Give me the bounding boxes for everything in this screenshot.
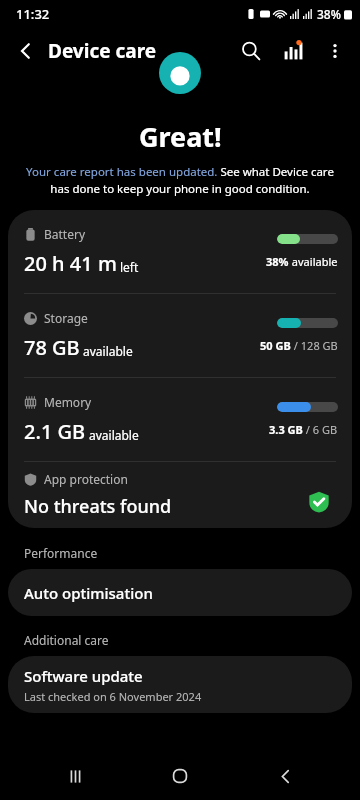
staticText: 38% [317,6,341,22]
staticText: Memory [44,394,92,410]
staticText: Software update [24,666,143,686]
staticText: / 6 GB [303,422,338,437]
button[interactable]: App protection [8,462,352,528]
button[interactable]: Home [150,752,210,800]
staticText: No threats found [24,494,172,519]
staticText: available [289,254,338,269]
staticText: Storage [44,310,88,326]
staticText: 11:32 [16,5,50,23]
staticText: Additional care [24,632,109,648]
staticText: Performance [24,545,98,561]
staticText: / 128 GB [291,338,338,353]
staticText: Auto optimisation [24,583,153,603]
button[interactable]: More options [314,30,356,72]
button[interactable]: Memory [8,378,352,461]
staticText: 3.3 GB [269,422,303,437]
staticText: available [89,427,139,443]
staticText: 38% [266,254,289,269]
staticText: 20 h 41 m [24,250,117,277]
staticText: Last checked on 6 November 2024 [24,689,202,704]
staticText: 50 GB [260,338,291,353]
staticText: Device care [48,38,157,64]
staticText: Great! [139,118,222,155]
button[interactable]: Auto optimisation [8,569,352,616]
button[interactable]: Battery [8,210,352,293]
button[interactable]: Usage statistics [272,30,314,72]
button[interactable]: Software update [8,656,352,713]
button[interactable]: Storage [8,294,352,377]
staticText: Your care report has been updated. See w… [20,164,340,196]
staticText: App protection [44,471,128,487]
button[interactable]: Navigate up [6,31,46,71]
button[interactable]: Search [230,30,272,72]
staticText: left [120,259,139,275]
staticText: 2.1 GB [24,418,86,445]
staticText: available [83,343,133,359]
button[interactable]: Recent apps [45,752,105,800]
staticText: Battery [44,226,86,242]
button[interactable]: Back [255,752,315,800]
staticText: 78 GB [24,334,80,361]
